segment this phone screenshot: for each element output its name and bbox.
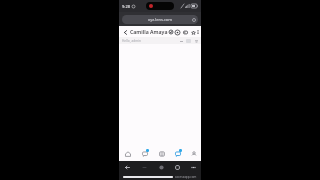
staticText: xyz.lens.com: [148, 17, 172, 22]
button[interactable]: Favorite: [189, 28, 197, 36]
button[interactable]: More options: [197, 28, 199, 35]
button[interactable]: Back: [121, 28, 129, 36]
button[interactable]: Filter: [194, 39, 198, 43]
staticText: Hello, admin: [122, 39, 141, 43]
button[interactable]: Messages: [136, 146, 153, 161]
button[interactable]: Forward: [136, 161, 153, 174]
other: Share page: [192, 18, 196, 22]
staticText: 9:28: [122, 4, 130, 9]
button[interactable]: Call: [173, 28, 181, 36]
staticText: accessapp.com: [175, 175, 197, 179]
button[interactable]: Menu: [185, 161, 201, 174]
button[interactable]: Profile: [185, 146, 201, 161]
button[interactable]: Tasks: [153, 146, 169, 161]
button[interactable]: Tabs: [169, 161, 185, 174]
staticText: Camilla Amaya: [130, 28, 168, 35]
button[interactable]: Video call: [181, 28, 189, 36]
button[interactable]: Home: [153, 161, 169, 174]
button[interactable]: Home: [119, 146, 136, 161]
button[interactable]: Back: [119, 161, 136, 174]
button[interactable]: Chats: [169, 146, 185, 161]
button[interactable]: xyz.lens.com: [122, 15, 198, 24]
button[interactable]: Undo: [179, 39, 183, 43]
